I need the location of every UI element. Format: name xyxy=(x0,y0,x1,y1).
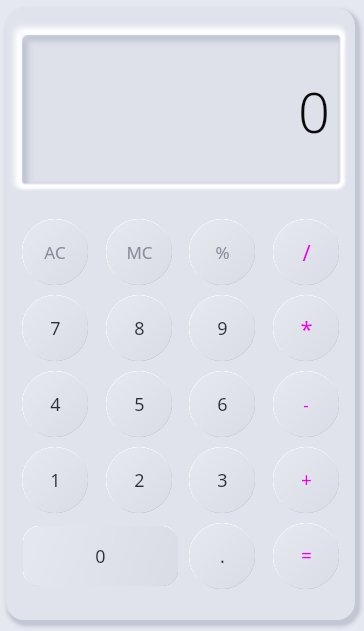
staticText: 2 xyxy=(134,468,145,493)
button[interactable]: / xyxy=(273,219,339,285)
button[interactable]: 8 xyxy=(106,295,172,361)
staticText: . xyxy=(220,544,225,569)
button[interactable]: 6 xyxy=(189,371,255,437)
staticText: 1 xyxy=(50,468,61,493)
button[interactable]: 7 xyxy=(22,295,88,361)
button[interactable]: + xyxy=(273,447,339,513)
staticText: 0 xyxy=(95,544,106,569)
button[interactable]: 2 xyxy=(106,447,172,513)
button[interactable]: 9 xyxy=(189,295,255,361)
staticText: / xyxy=(302,237,311,267)
button[interactable]: AC xyxy=(22,219,88,285)
staticText: AC xyxy=(44,241,66,264)
button[interactable]: 1 xyxy=(22,447,88,513)
button[interactable]: % xyxy=(189,219,255,285)
staticText: 7 xyxy=(50,316,61,341)
staticText: MC xyxy=(126,241,153,264)
button[interactable]: 5 xyxy=(106,371,172,437)
button[interactable]: * xyxy=(273,295,339,361)
staticText: 0 xyxy=(298,73,330,149)
staticText: % xyxy=(215,241,230,264)
button[interactable]: . xyxy=(189,523,255,589)
staticText: * xyxy=(300,313,313,343)
button[interactable]: = xyxy=(273,523,339,589)
button[interactable]: - xyxy=(273,371,339,437)
button[interactable]: 0 xyxy=(23,526,178,586)
staticText: 4 xyxy=(50,392,61,417)
staticText: 9 xyxy=(217,316,228,341)
staticText: - xyxy=(303,393,309,416)
staticText: 5 xyxy=(134,392,145,417)
staticText: 8 xyxy=(134,316,145,341)
button[interactable]: 3 xyxy=(189,447,255,513)
staticText: + xyxy=(301,467,312,493)
button[interactable]: 4 xyxy=(22,371,88,437)
staticText: 6 xyxy=(217,392,228,417)
staticText: = xyxy=(301,543,312,569)
button[interactable]: MC xyxy=(106,219,172,285)
staticText: 3 xyxy=(217,468,228,493)
